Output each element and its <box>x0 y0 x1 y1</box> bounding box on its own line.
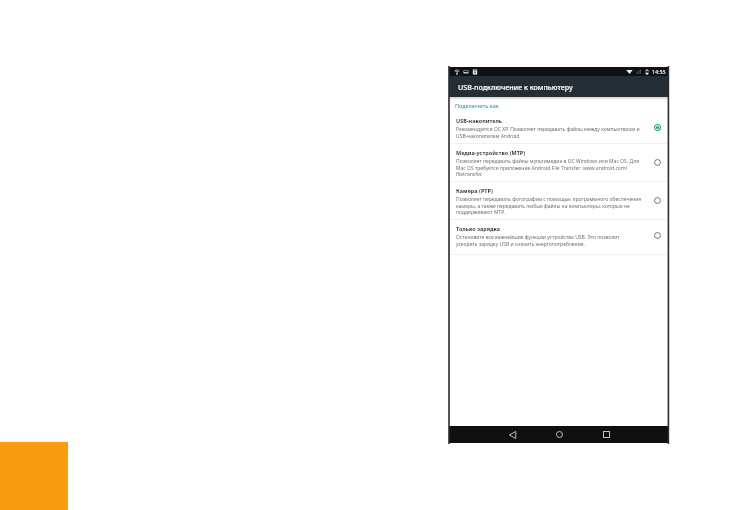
button[interactable]: Recents <box>597 426 615 443</box>
staticText: Только зарядка <box>456 225 501 232</box>
staticText: Рекомендуется ОС XP. Позволяет передават… <box>456 126 650 139</box>
button[interactable]: Back <box>503 426 521 443</box>
staticText: Позволяет передавать файлы мультимедиа в… <box>456 158 650 177</box>
button[interactable]: Home <box>550 426 568 443</box>
button[interactable]: Медиа-устройство (MTP) <box>449 144 669 182</box>
button[interactable]: Камера (PTP) <box>449 182 669 220</box>
staticText: USB-подключение к компьютеру <box>458 82 573 92</box>
staticText: Позволяет передавать фотографии с помощь… <box>456 196 650 215</box>
staticText: Подключить как <box>455 102 499 109</box>
staticText: Остановите все важнейшие функции устройс… <box>456 234 620 247</box>
staticText: Камера (PTP) <box>456 187 493 194</box>
button[interactable]: Только зарядка <box>449 220 669 255</box>
staticText: Медиа-устройство (MTP) <box>456 149 526 156</box>
staticText: 14:55 <box>652 68 666 75</box>
staticText: USB-накопитель <box>456 117 503 124</box>
button[interactable]: USB-накопитель <box>449 112 669 144</box>
